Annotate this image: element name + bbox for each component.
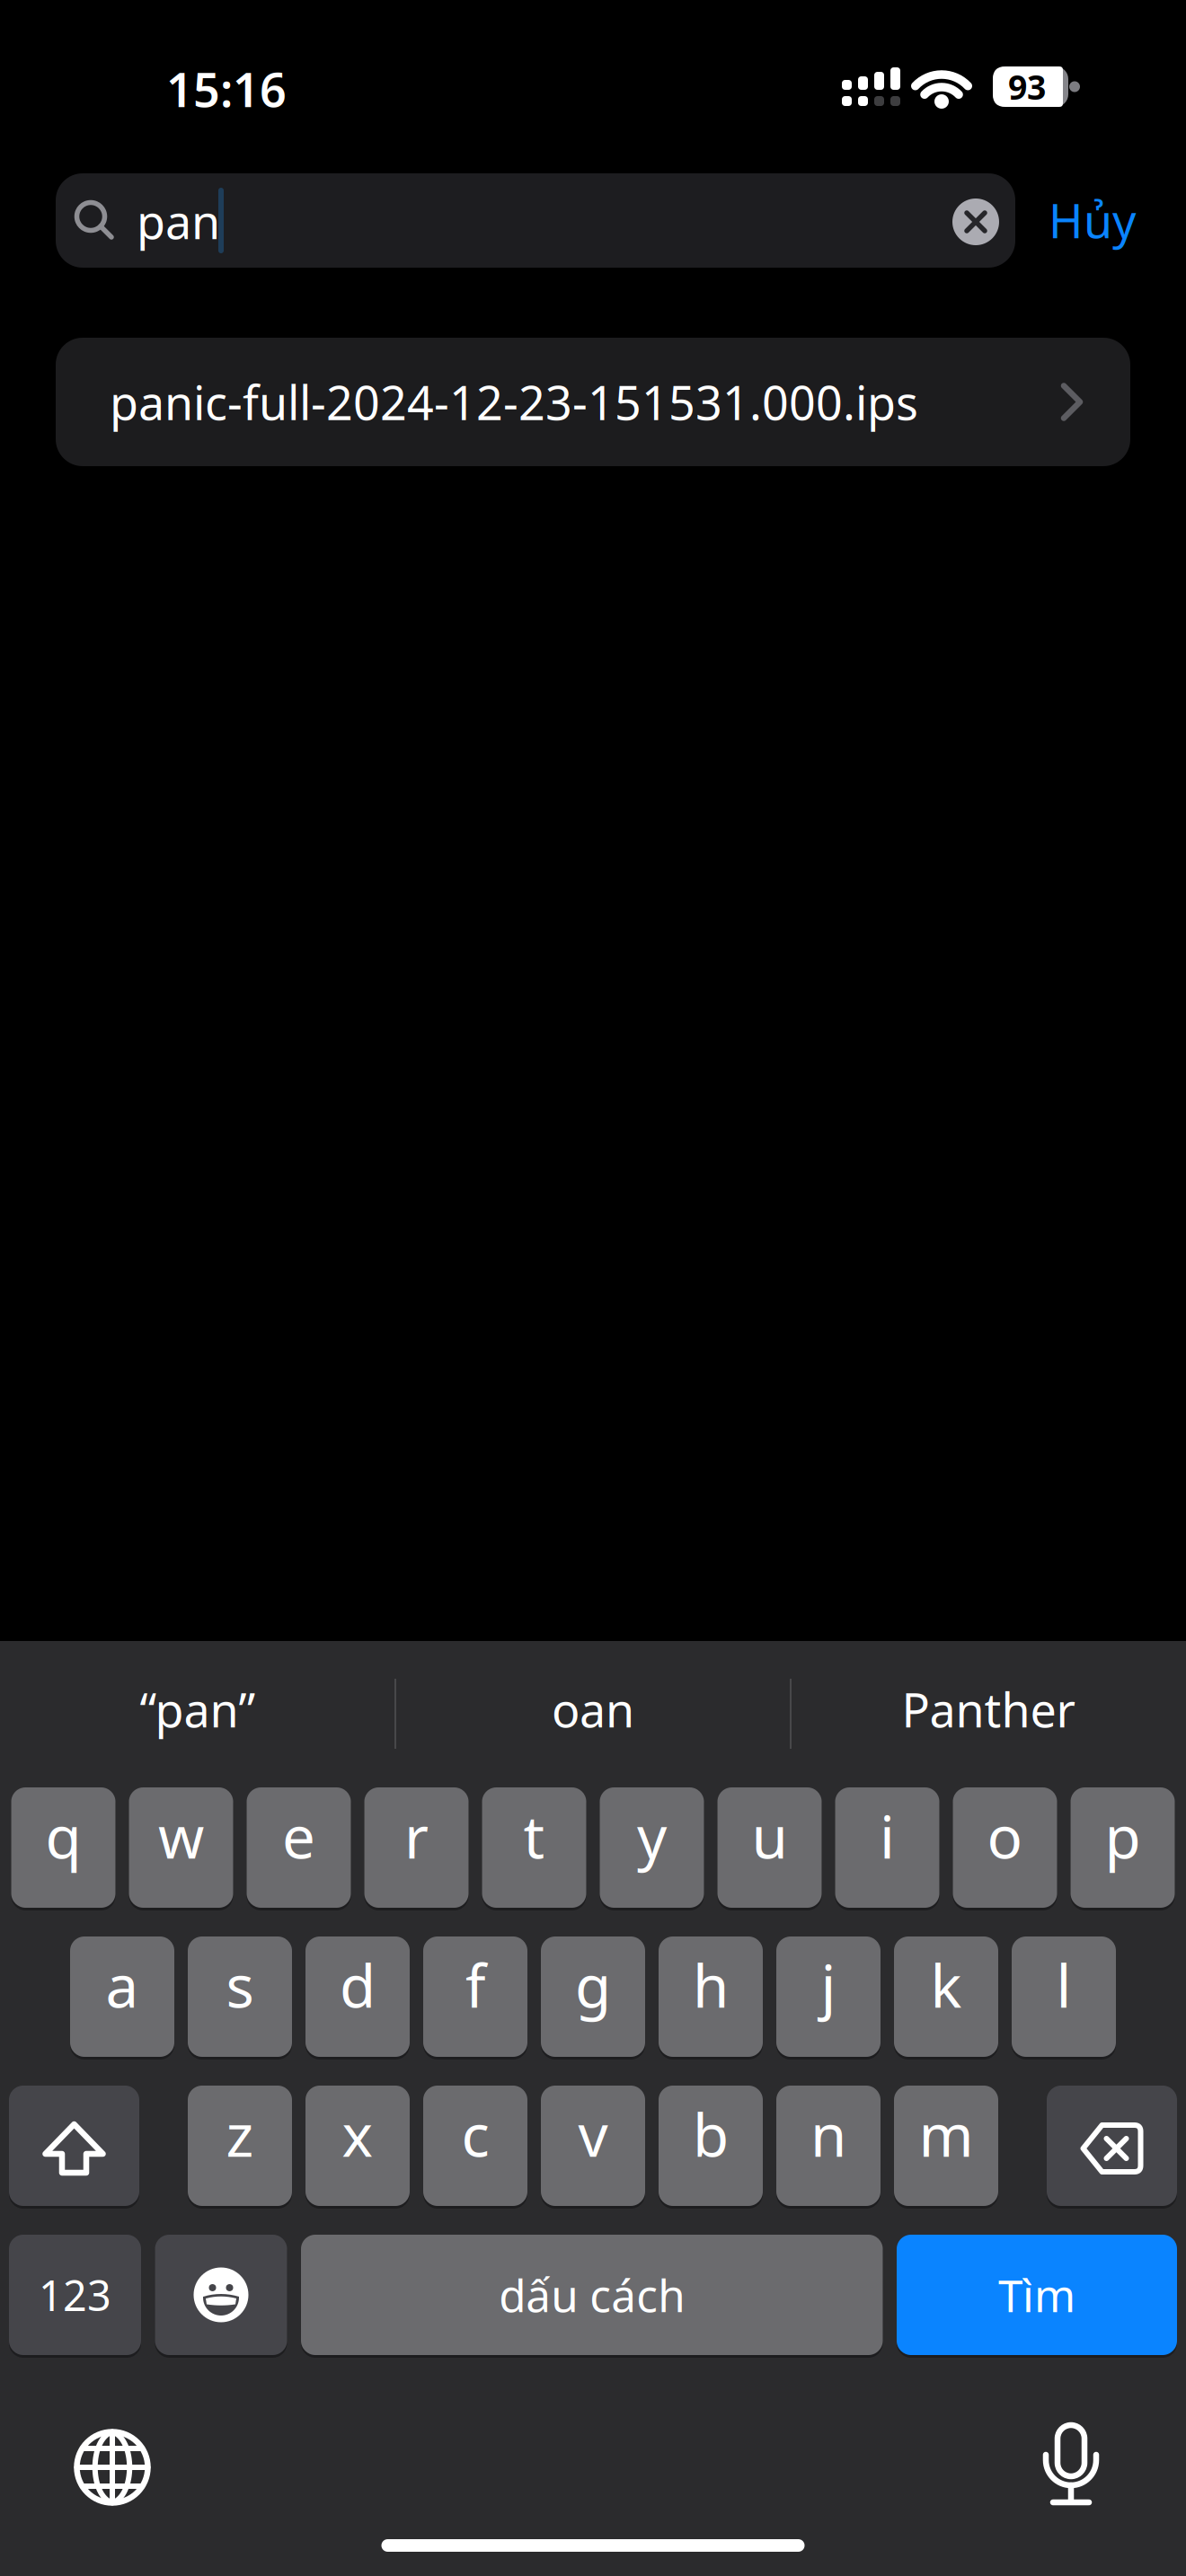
staticText: i <box>880 1797 895 1875</box>
button[interactable]: p <box>1071 1787 1175 1908</box>
button[interactable]: b <box>659 2086 763 2206</box>
staticText: o <box>987 1797 1023 1875</box>
button[interactable]: “pan” <box>0 0 394 144</box>
staticText: a <box>106 1946 139 2024</box>
staticText: l <box>1056 1946 1071 2024</box>
button[interactable]: l <box>1012 1936 1116 2057</box>
staticText: pan <box>137 190 220 252</box>
button[interactable]: Emoji <box>155 2235 287 2355</box>
staticText: oan <box>552 1678 634 1740</box>
staticText: g <box>575 1946 611 2024</box>
button[interactable]: e <box>247 1787 351 1908</box>
staticText: Tìm <box>998 2265 1075 2324</box>
staticText: 93 <box>1008 64 1046 109</box>
button[interactable]: Dictate <box>1040 2425 1102 2506</box>
button[interactable]: t <box>482 1787 586 1908</box>
staticText: k <box>930 1946 962 2024</box>
button[interactable]: Delete <box>1047 2086 1177 2206</box>
button[interactable]: v <box>541 2086 645 2206</box>
button[interactable]: oan <box>0 0 394 144</box>
staticText: p <box>1105 1797 1141 1875</box>
staticText: m <box>919 2095 974 2173</box>
staticText: b <box>693 2095 729 2173</box>
staticText: n <box>810 2095 846 2173</box>
staticText: z <box>226 2095 254 2173</box>
button[interactable]: Shift <box>9 2086 139 2206</box>
button[interactable]: y <box>600 1787 704 1908</box>
button[interactable]: q <box>11 1787 115 1908</box>
staticText: dấu cách <box>499 2265 685 2324</box>
button[interactable]: r <box>364 1787 469 1908</box>
button[interactable]: u <box>717 1787 822 1908</box>
button[interactable]: j <box>776 1936 881 2057</box>
button[interactable]: w <box>129 1787 233 1908</box>
button[interactable]: c <box>423 2086 527 2206</box>
button[interactable]: g <box>541 1936 645 2057</box>
staticText: “pan” <box>140 1678 256 1740</box>
button[interactable]: Tìm <box>897 2235 1177 2355</box>
staticText: d <box>340 1946 376 2024</box>
button[interactable]: i <box>835 1787 939 1908</box>
staticText: v <box>578 2095 608 2173</box>
button[interactable]: f <box>423 1936 527 2057</box>
button[interactable]: a <box>70 1936 174 2057</box>
button[interactable]: d <box>305 1936 410 2057</box>
button[interactable]: Panther <box>0 0 394 144</box>
staticText: u <box>752 1797 788 1875</box>
staticText: h <box>693 1946 729 2024</box>
staticText: r <box>404 1797 429 1875</box>
button[interactable]: dấu cách <box>301 2235 883 2355</box>
button[interactable]: z <box>188 2086 292 2206</box>
button[interactable]: h <box>659 1936 763 2057</box>
button[interactable]: n <box>776 2086 881 2206</box>
staticText: q <box>45 1797 81 1875</box>
staticText: e <box>282 1797 315 1875</box>
staticText: panic-full-2024-12-23-151531.000.ips <box>110 371 918 433</box>
staticText: c <box>461 2095 489 2173</box>
button[interactable]: s <box>188 1936 292 2057</box>
button[interactable]: 123 <box>9 2235 141 2355</box>
button[interactable]: panic-full-2024-12-23-151531.000.ips <box>56 338 1130 466</box>
staticText: j <box>821 1946 836 2024</box>
staticText: Hủy <box>1049 189 1137 251</box>
button[interactable]: Next keyboard <box>74 2429 151 2506</box>
staticText: s <box>226 1946 254 2024</box>
staticText: 123 <box>39 2267 111 2323</box>
staticText: t <box>523 1797 545 1875</box>
staticText: w <box>158 1797 204 1875</box>
button[interactable]: x <box>305 2086 410 2206</box>
button[interactable]: o <box>953 1787 1057 1908</box>
button[interactable]: k <box>894 1936 998 2057</box>
button[interactable]: m <box>894 2086 998 2206</box>
staticText: Panther <box>902 1678 1075 1740</box>
button[interactable]: Clear text <box>952 198 999 245</box>
staticText: x <box>342 2095 373 2173</box>
staticText: y <box>637 1797 667 1875</box>
staticText: f <box>465 1946 485 2024</box>
staticText: 15:16 <box>166 58 287 120</box>
